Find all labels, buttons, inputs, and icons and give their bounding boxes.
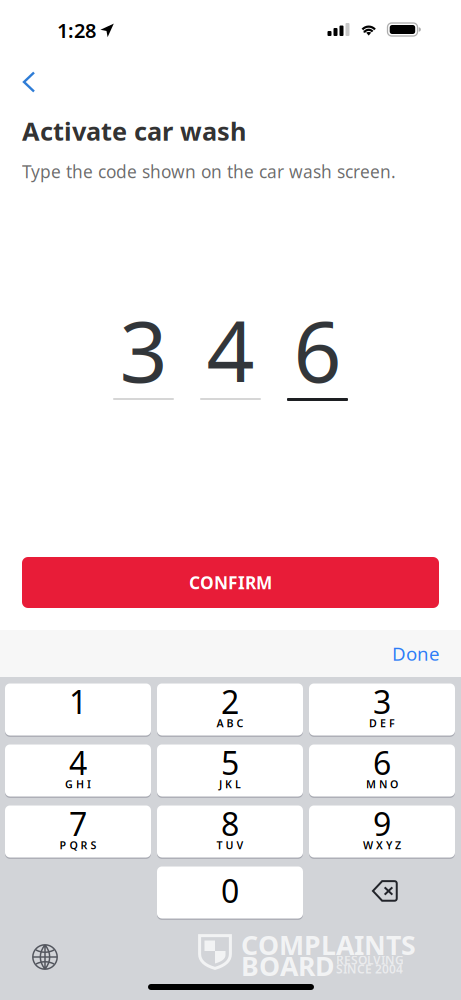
button[interactable]: 9 <box>309 805 455 858</box>
staticText: 3 <box>119 294 167 406</box>
staticText: 4 <box>69 741 87 784</box>
button[interactable]: 8 <box>157 805 303 858</box>
staticText: 5 <box>221 741 239 784</box>
staticText: Done <box>392 641 440 666</box>
staticText: Activate car wash <box>22 114 246 148</box>
staticText: CONFIRM <box>189 571 272 594</box>
staticText: RESOLVING <box>336 952 404 968</box>
button[interactable]: 5 <box>157 744 303 797</box>
button[interactable]: Delete <box>309 866 455 919</box>
button[interactable]: 7 <box>5 805 151 858</box>
button[interactable]: Back <box>7 60 51 104</box>
staticText: Type the code shown on the car wash scre… <box>22 160 396 183</box>
staticText: P Q R S <box>59 838 96 852</box>
staticText: M N O <box>366 777 398 791</box>
button[interactable]: CONFIRM <box>22 557 439 608</box>
staticText: T U V <box>216 838 243 852</box>
staticText: 9 <box>373 802 391 845</box>
staticText: A B C <box>216 716 243 730</box>
staticText: W X Y Z <box>363 838 401 852</box>
staticText: 7 <box>69 802 87 845</box>
button[interactable]: Next keyboard <box>23 935 67 979</box>
button[interactable]: 3 <box>309 683 455 736</box>
button[interactable]: 0 <box>157 866 303 919</box>
staticText: D E F <box>369 716 395 730</box>
button[interactable]: 1 <box>5 683 151 736</box>
staticText: 0 <box>221 869 239 912</box>
staticText: SINCE 2004 <box>336 961 403 977</box>
button[interactable]: Done <box>378 631 454 676</box>
staticText: 4 <box>206 294 254 406</box>
staticText: G H I <box>65 777 91 791</box>
staticText: 6 <box>373 741 391 784</box>
staticText: 3 <box>373 680 391 723</box>
staticText: 8 <box>221 802 239 845</box>
button[interactable]: 2 <box>157 683 303 736</box>
button[interactable]: 6 <box>309 744 455 797</box>
staticText: COMPLAINTS <box>241 927 416 962</box>
staticText: 1:28 <box>57 17 96 44</box>
button[interactable]: 4 <box>5 744 151 797</box>
staticText: J K L <box>219 777 241 791</box>
staticText: 6 <box>293 294 341 406</box>
staticText: BOARD <box>241 948 335 983</box>
staticText: 1 <box>69 680 87 723</box>
staticText: 2 <box>221 680 239 723</box>
